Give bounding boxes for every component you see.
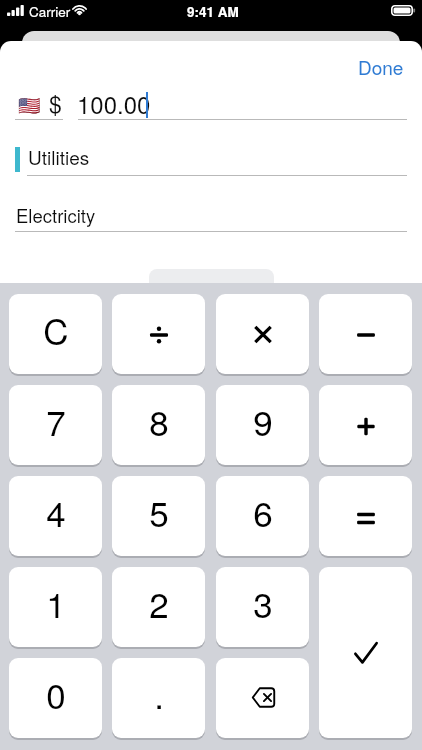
- button[interactable]: 4: [9, 476, 102, 556]
- staticText: 3: [253, 578, 273, 628]
- staticText: 9: [253, 396, 273, 446]
- button[interactable]: Done: [349, 50, 413, 82]
- staticText: Utilities: [28, 143, 90, 170]
- staticText: 1: [46, 578, 66, 628]
- button[interactable]: Multiply: [216, 294, 309, 374]
- staticText: 6: [253, 487, 273, 537]
- staticText: .: [154, 669, 164, 719]
- button[interactable]: .: [112, 658, 205, 738]
- staticText: Done: [358, 53, 404, 80]
- staticText: 8: [149, 396, 169, 446]
- button[interactable]: 3: [216, 567, 309, 647]
- button[interactable]: 6: [216, 476, 309, 556]
- button[interactable]: Confirm: [319, 567, 412, 738]
- button[interactable]: 8: [112, 385, 205, 465]
- staticText: $: [49, 87, 62, 119]
- staticText: 🇺🇸: [18, 95, 41, 116]
- button[interactable]: C: [9, 294, 102, 374]
- staticText: Electricity: [16, 202, 96, 228]
- staticText: Carrier: [29, 2, 71, 21]
- staticText: 4: [46, 487, 66, 537]
- staticText: 7: [46, 396, 66, 446]
- button[interactable]: Equals: [319, 476, 412, 556]
- staticText: C: [43, 305, 69, 355]
- button[interactable]: Delete: [216, 658, 309, 738]
- button[interactable]: Plus: [319, 385, 412, 465]
- staticText: 5: [149, 487, 169, 537]
- button[interactable]: Divide: [112, 294, 205, 374]
- staticText: 0: [46, 669, 66, 719]
- staticText: 9:41 AM: [187, 2, 239, 21]
- button[interactable]: 1: [9, 567, 102, 647]
- button[interactable]: 2: [112, 567, 205, 647]
- button[interactable]: 5: [112, 476, 205, 556]
- button[interactable]: 0: [9, 658, 102, 738]
- staticText: 100.00: [77, 86, 151, 118]
- staticText: 2: [149, 578, 169, 628]
- button[interactable]: Minus: [319, 294, 412, 374]
- button[interactable]: 7: [9, 385, 102, 465]
- button[interactable]: 9: [216, 385, 309, 465]
